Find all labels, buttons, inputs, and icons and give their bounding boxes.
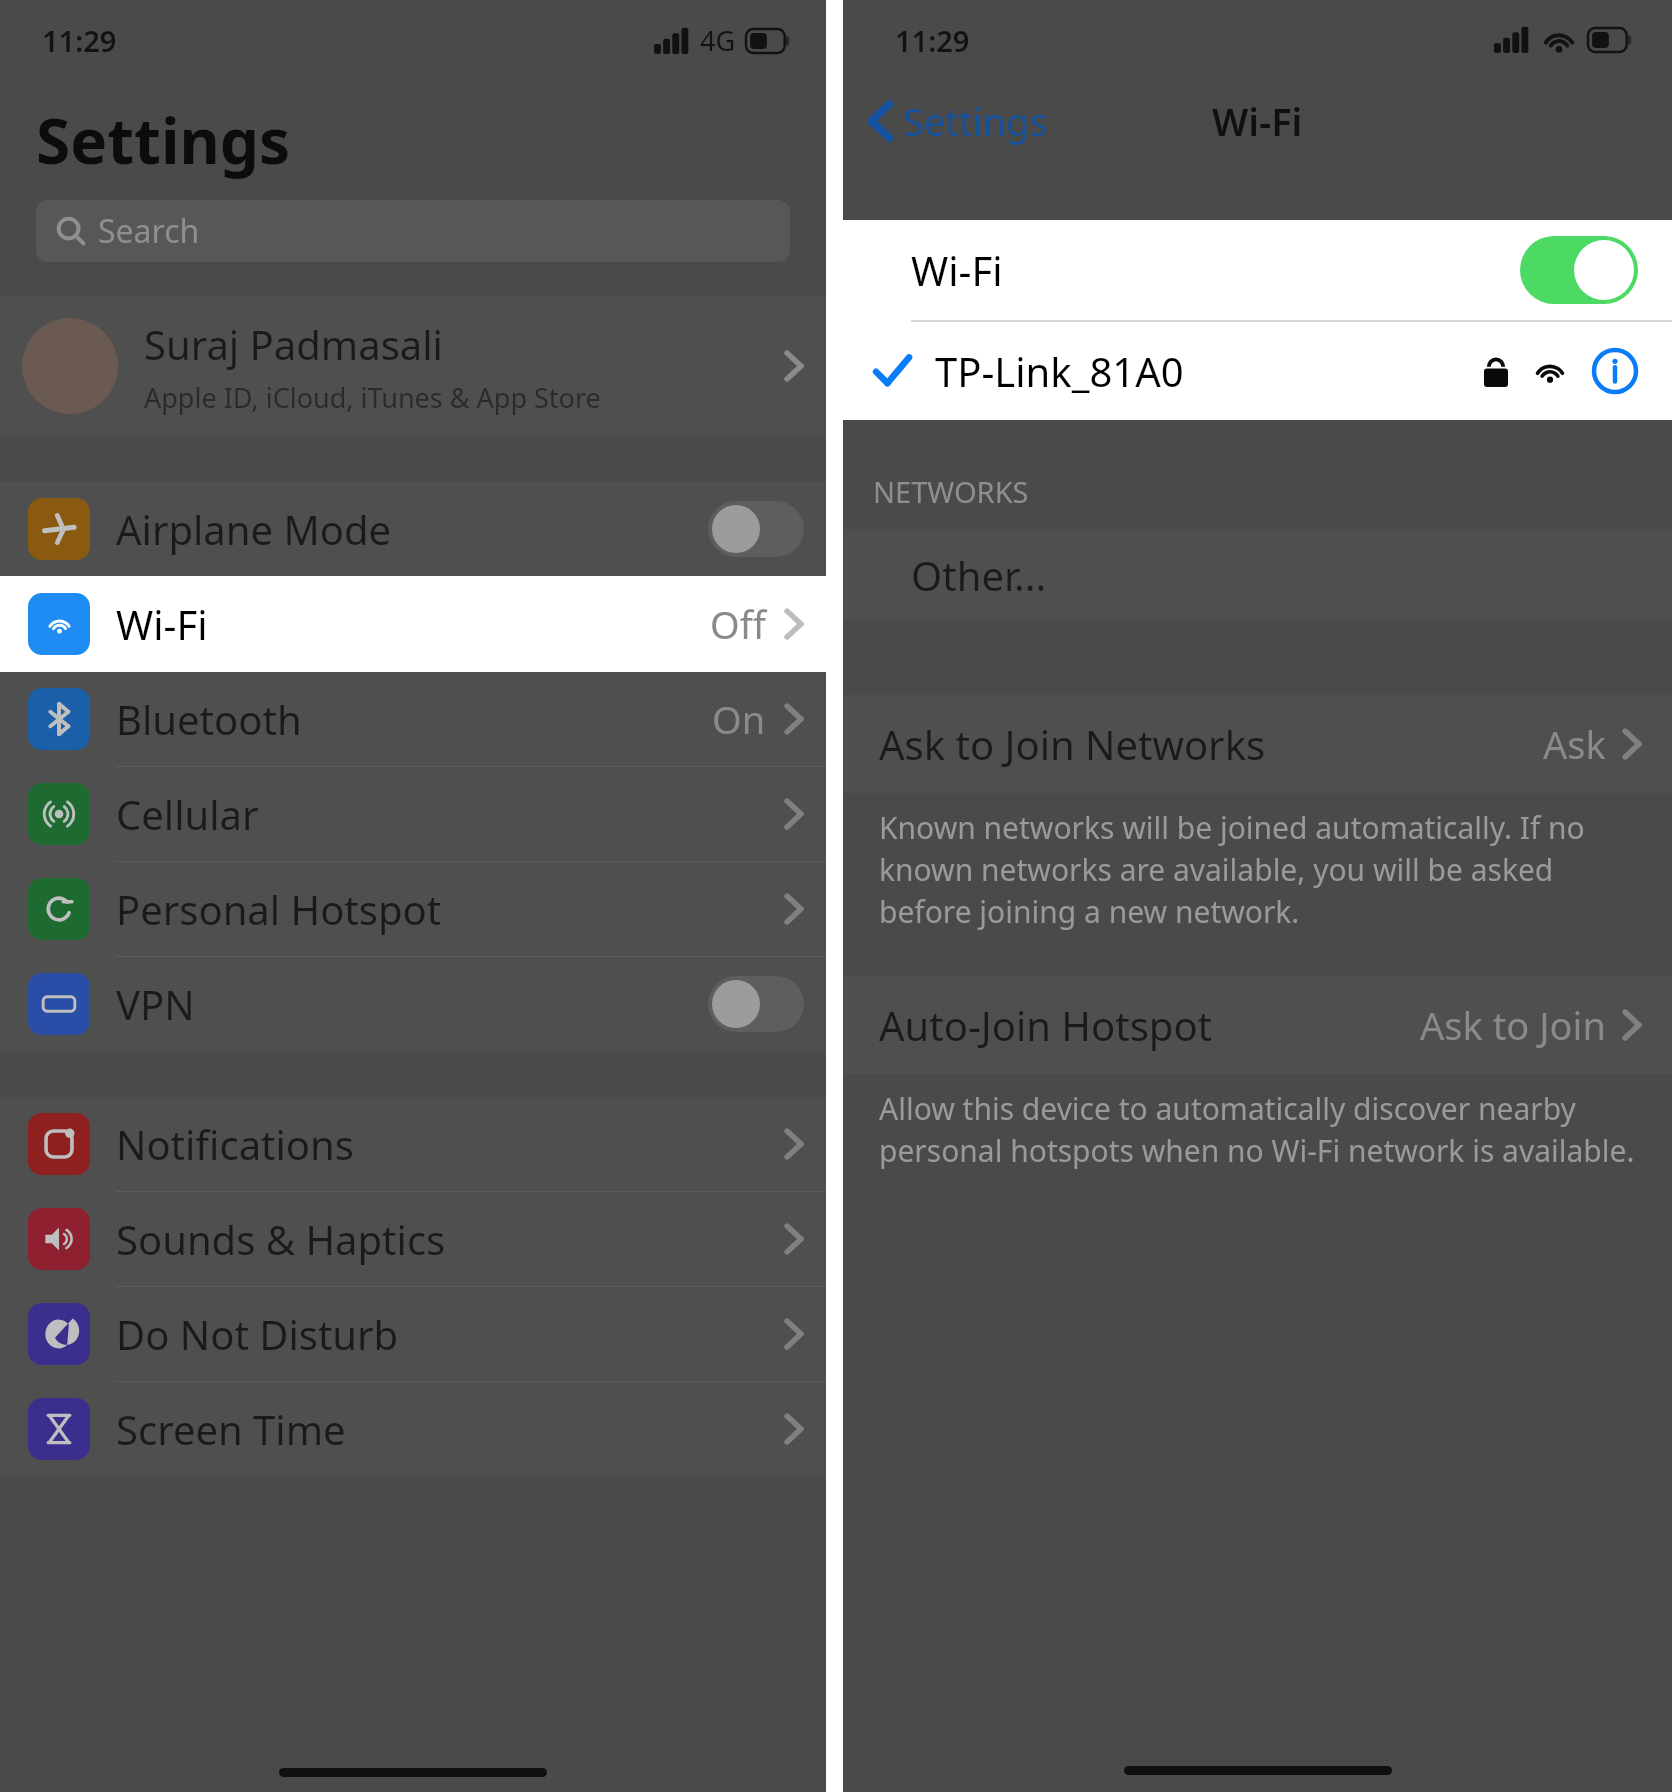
staticText: On [712,693,766,745]
staticText: Ask to Join [1420,999,1606,1051]
button[interactable]: TP-Link_81A0 [843,322,1672,420]
button[interactable]: Wi-Fi [843,220,1672,320]
staticText: Off [710,598,766,650]
staticText: 11:29 [42,21,117,60]
button[interactable]: Personal Hotspot [0,862,826,956]
button[interactable]: Wi-Fi [0,576,826,672]
button[interactable]: Airplane Mode [0,482,826,576]
staticText: Settings [903,95,1048,147]
staticText: 11:29 [895,21,970,60]
button[interactable]: Search [36,200,790,262]
staticText: Airplane Mode [116,502,708,556]
staticText: Auto-Join Hotspot [879,998,1420,1052]
button[interactable]: Bluetooth [0,672,826,766]
staticText: Wi-Fi [116,597,710,651]
staticText: Do Not Disturb [116,1307,784,1361]
staticText: Bluetooth [116,692,712,746]
staticText: Wi-Fi [1212,95,1303,147]
button[interactable]: Screen Time [0,1382,826,1476]
button[interactable]: VPN [0,957,826,1051]
staticText: Apple ID, iCloud, iTunes & App Store [144,379,601,416]
button[interactable]: Auto-Join Hotspot [843,976,1672,1074]
button[interactable]: Cellular [0,767,826,861]
button[interactable]: Other... [843,529,1672,621]
button[interactable]: Wi-Fi on [1520,236,1638,304]
staticText: Ask to Join Networks [879,717,1543,771]
button[interactable]: Suraj Padmasali [0,296,826,436]
staticText: Notifications [116,1117,784,1171]
staticText: Cellular [116,787,784,841]
staticText: NETWORKS [873,472,1029,511]
staticText: 4G [700,22,736,59]
button[interactable]: Notifications [0,1097,826,1191]
button[interactable]: Do Not Disturb [0,1287,826,1381]
staticText: Suraj Padmasali [144,317,443,371]
button[interactable]: Settings [869,95,1048,147]
staticText: Ask [1543,718,1606,770]
button[interactable]: Airplane Mode toggle [708,501,804,557]
staticText: Screen Time [116,1402,784,1456]
staticText: Known networks will be joined automatica… [879,807,1640,932]
staticText: Other... [911,548,1047,602]
button[interactable]: Sounds & Haptics [0,1192,826,1286]
button[interactable]: VPN toggle [708,976,804,1032]
staticText: Wi-Fi [911,243,1520,297]
staticText: Sounds & Haptics [116,1212,784,1266]
staticText: Search [98,209,200,253]
staticText: Personal Hotspot [116,882,784,936]
staticText: Settings [36,98,291,182]
button[interactable]: Ask to Join Networks [843,695,1672,793]
staticText: Allow this device to automatically disco… [879,1088,1640,1171]
staticText: VPN [116,977,708,1031]
staticText: TP-Link_81A0 [935,344,1484,398]
